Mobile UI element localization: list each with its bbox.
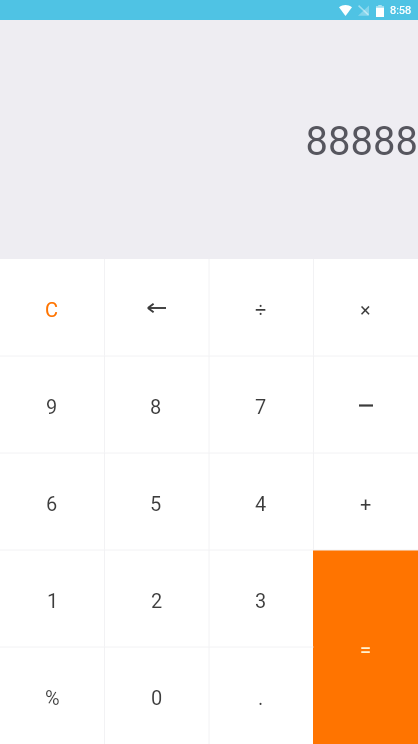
button[interactable]: 1 (0, 550, 105, 647)
staticText: 88888 (305, 118, 418, 165)
staticText: . (258, 686, 264, 709)
staticText: 8 (150, 395, 162, 418)
staticText: 7 (255, 395, 267, 418)
staticText: 5 (150, 492, 162, 515)
button[interactable]: 5 (104, 453, 208, 550)
staticText: 9 (46, 395, 58, 418)
staticText: ÷ (255, 298, 267, 321)
button[interactable]: 4 (208, 453, 313, 550)
button[interactable]: 8 (104, 356, 208, 453)
button[interactable]: Minus (313, 356, 418, 453)
staticText: + (360, 492, 372, 515)
staticText: % (45, 686, 60, 709)
button[interactable]: 3 (209, 550, 313, 647)
staticText: 8:58 (390, 4, 412, 17)
button[interactable]: . (209, 647, 313, 744)
button[interactable]: Equals (313, 550, 418, 744)
button[interactable]: Backspace (104, 259, 208, 356)
button[interactable]: Plus (313, 453, 418, 550)
button[interactable]: 0 (105, 647, 209, 744)
button[interactable]: 6 (0, 453, 104, 550)
staticText: 3 (255, 589, 267, 612)
button[interactable]: Multiply (313, 259, 418, 356)
staticText: C (45, 298, 59, 321)
staticText: 2 (151, 589, 163, 612)
staticText: × (360, 298, 371, 321)
button[interactable]: 7 (208, 356, 313, 453)
staticText: 6 (46, 492, 58, 515)
button[interactable]: % (0, 647, 105, 744)
button[interactable]: 2 (105, 550, 209, 647)
button[interactable]: C (0, 259, 104, 356)
staticText: 4 (255, 492, 267, 515)
staticText: = (360, 638, 371, 661)
button[interactable]: 9 (0, 356, 104, 453)
button[interactable]: Divide (208, 259, 313, 356)
staticText: 1 (47, 589, 59, 612)
staticText: 0 (151, 686, 163, 709)
